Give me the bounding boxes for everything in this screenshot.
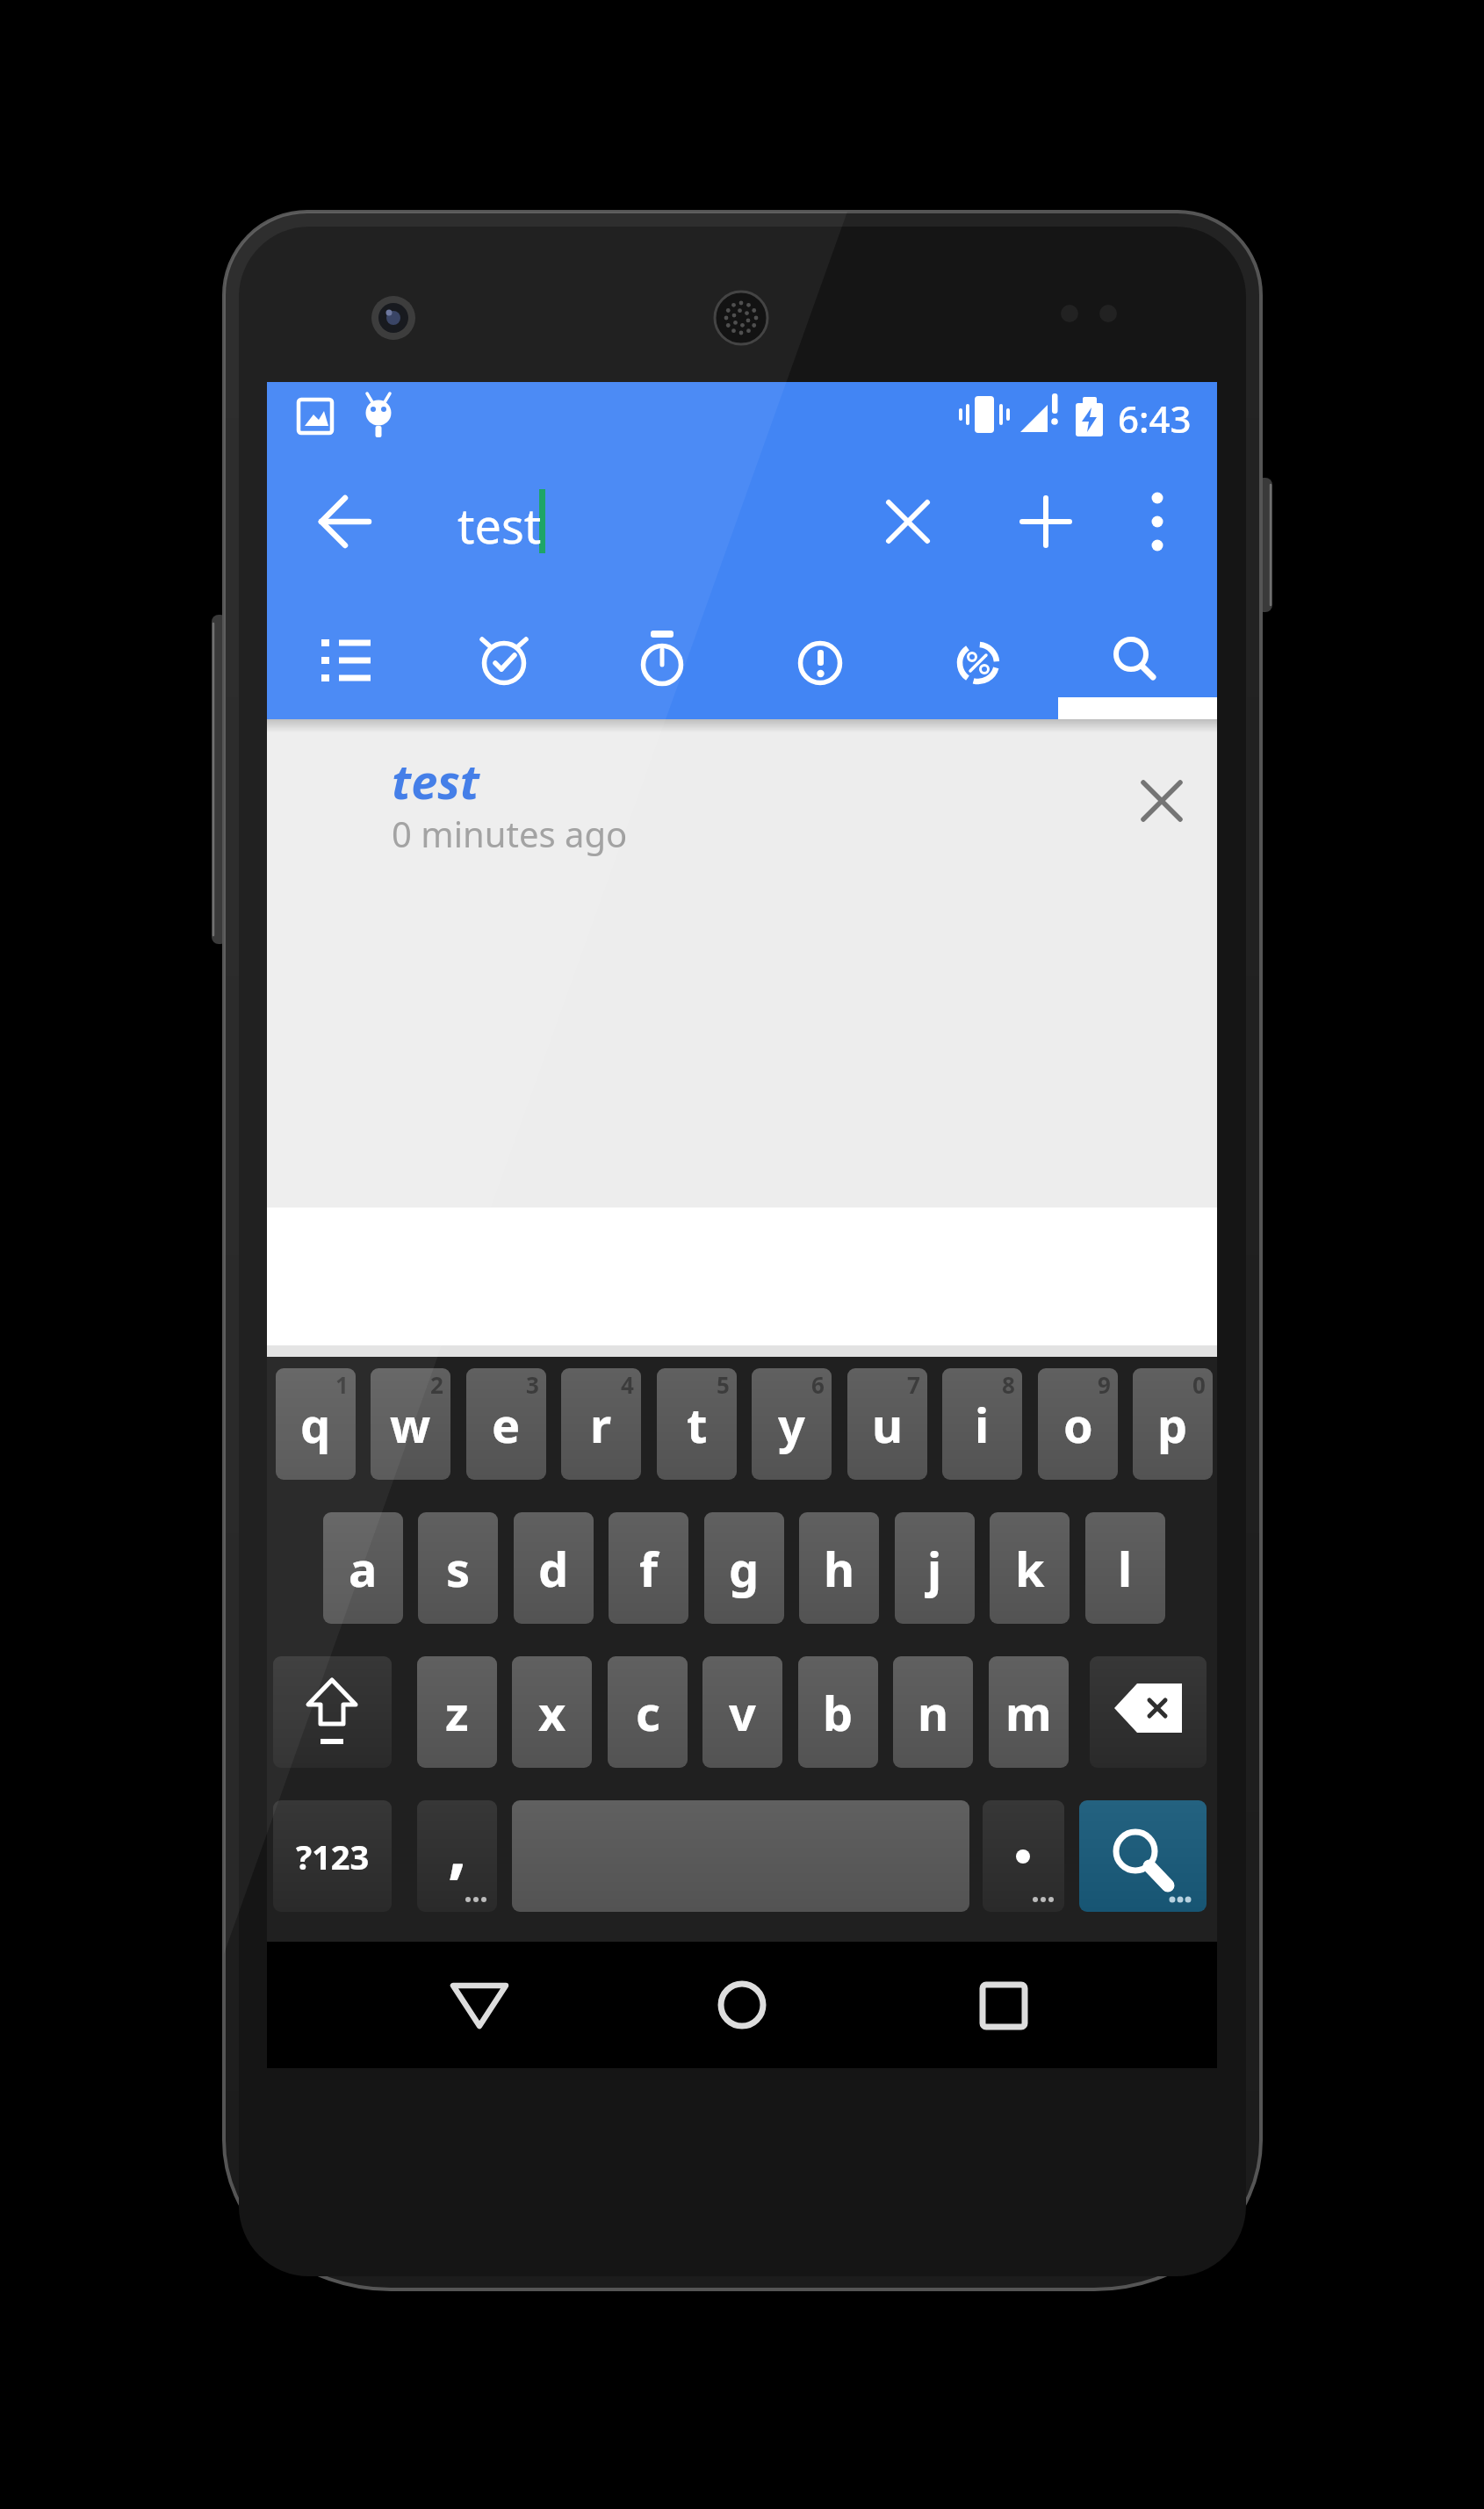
staticText: 7 [907, 1369, 920, 1400]
button[interactable] [1123, 761, 1202, 840]
staticText: z [445, 1680, 469, 1745]
button[interactable]: c [608, 1656, 688, 1768]
staticText: s [446, 1536, 471, 1601]
button[interactable] [983, 1800, 1064, 1912]
button[interactable]: d [514, 1512, 594, 1624]
button[interactable]: q [276, 1368, 356, 1480]
button[interactable] [425, 615, 583, 719]
button[interactable]: u [847, 1368, 927, 1480]
button[interactable]: , [417, 1800, 497, 1912]
staticText: r [590, 1392, 612, 1457]
staticText: 8 [1002, 1369, 1015, 1400]
staticText: 9 [1098, 1369, 1111, 1400]
staticText: 3 [526, 1369, 539, 1400]
button[interactable] [860, 474, 956, 571]
staticText: l [1118, 1536, 1133, 1601]
button[interactable]: b [798, 1656, 878, 1768]
button[interactable] [688, 1954, 798, 2055]
staticText: 2 [430, 1369, 443, 1400]
button[interactable] [267, 729, 1110, 878]
button[interactable]: z [417, 1656, 497, 1768]
button[interactable]: x [512, 1656, 592, 1768]
staticText: test [392, 748, 480, 813]
staticText: b [823, 1680, 854, 1745]
button[interactable]: j [895, 1512, 975, 1624]
staticText: q [300, 1392, 331, 1457]
staticText: ?123 [296, 1834, 370, 1879]
button[interactable]: t [657, 1368, 737, 1480]
staticText: n [918, 1680, 949, 1745]
staticText: x [538, 1680, 566, 1745]
staticText: k [1015, 1536, 1045, 1601]
button[interactable] [952, 1954, 1062, 2055]
button[interactable]: m [989, 1656, 1069, 1768]
button[interactable]: l [1085, 1512, 1165, 1624]
staticText: e [492, 1392, 521, 1457]
button[interactable]: f [609, 1512, 688, 1624]
staticText: v [729, 1680, 756, 1745]
button[interactable]: g [704, 1512, 784, 1624]
button[interactable] [407, 470, 846, 575]
button[interactable] [741, 615, 899, 719]
button[interactable]: w [371, 1368, 450, 1480]
staticText: c [636, 1680, 660, 1745]
staticText: y [778, 1392, 805, 1457]
button[interactable] [273, 1656, 392, 1768]
button[interactable]: p [1133, 1368, 1213, 1480]
button[interactable]: y [752, 1368, 832, 1480]
button[interactable] [899, 615, 1057, 719]
button[interactable] [1090, 1656, 1207, 1768]
button[interactable] [293, 474, 394, 571]
button[interactable] [996, 474, 1092, 571]
button[interactable]: i [942, 1368, 1022, 1480]
staticText: t [687, 1392, 708, 1457]
staticText: , [448, 1800, 467, 1892]
staticText: d [538, 1536, 569, 1601]
staticText: j [927, 1536, 942, 1601]
staticText: w [390, 1392, 431, 1457]
staticText: g [729, 1536, 760, 1601]
staticText: h [824, 1536, 855, 1601]
staticText: o [1063, 1392, 1093, 1457]
button[interactable]: s [418, 1512, 498, 1624]
button[interactable] [267, 615, 425, 719]
button[interactable]: r [561, 1368, 641, 1480]
button[interactable] [583, 615, 741, 719]
staticText: f [639, 1536, 658, 1601]
staticText: a [349, 1536, 378, 1601]
button[interactable]: o [1038, 1368, 1118, 1480]
button[interactable] [425, 1954, 535, 2055]
button[interactable]: h [799, 1512, 879, 1624]
staticText: test [457, 493, 542, 558]
staticText: 4 [621, 1369, 634, 1400]
button[interactable]: a [323, 1512, 403, 1624]
button[interactable]: e [466, 1368, 546, 1480]
button[interactable]: n [893, 1656, 973, 1768]
button[interactable]: k [990, 1512, 1070, 1624]
button[interactable]: v [702, 1656, 782, 1768]
button[interactable]: ?123 [273, 1800, 392, 1912]
staticText: 5 [717, 1369, 730, 1400]
staticText: m [1005, 1680, 1052, 1745]
button[interactable] [1110, 474, 1207, 571]
staticText: 6 [811, 1369, 825, 1400]
staticText: i [975, 1392, 990, 1457]
staticText: 0 minutes ago [392, 810, 628, 857]
staticText: p [1157, 1392, 1188, 1457]
staticText: u [872, 1392, 904, 1457]
staticText: 1 [335, 1369, 349, 1400]
button[interactable] [1057, 615, 1215, 719]
button[interactable] [1079, 1800, 1207, 1912]
staticText: 0 [1192, 1369, 1206, 1400]
staticText: 6:43 [1118, 393, 1192, 443]
button[interactable] [512, 1800, 969, 1912]
